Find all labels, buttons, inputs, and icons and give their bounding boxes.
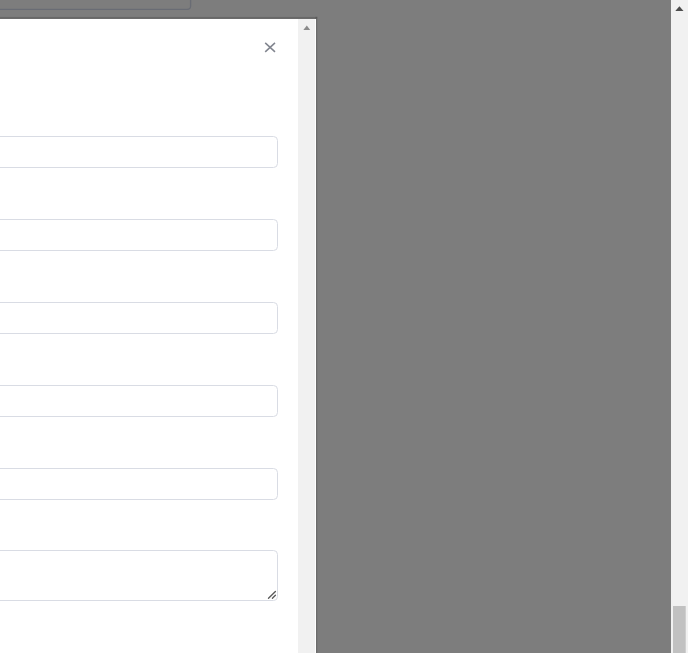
button[interactable]: Text field [0,303,278,334]
button[interactable]: Message text area [0,551,278,601]
button[interactable]: Text field [0,469,278,500]
button[interactable]: Text field [0,137,278,168]
button[interactable]: Text field [0,220,278,251]
button[interactable]: Text field [0,386,278,417]
button[interactable]: Scroll page [671,0,688,653]
button[interactable]: Close dialog [256,33,284,61]
button[interactable]: Scroll dialog [298,19,315,653]
